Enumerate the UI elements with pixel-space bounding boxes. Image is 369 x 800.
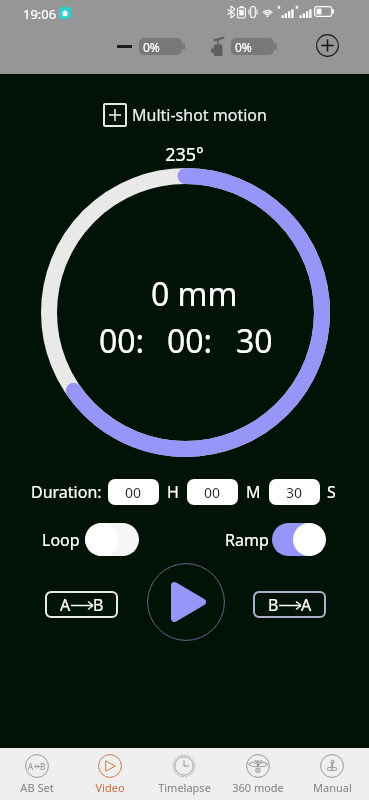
staticText: 00 (125, 483, 142, 502)
staticText: 00: (99, 319, 145, 363)
staticText: B (40, 761, 46, 772)
staticText: S (327, 481, 336, 503)
staticText: Loop (42, 529, 80, 551)
staticText: 0% (235, 39, 252, 55)
staticText: 360 (254, 759, 263, 766)
staticText: 30 (286, 483, 303, 502)
staticText: Manual (313, 780, 352, 795)
staticText: 235° (0, 142, 369, 167)
staticText: Timelapse (158, 780, 211, 795)
staticText: M (246, 481, 261, 503)
staticText: A (60, 594, 71, 616)
button[interactable]: 30 (269, 479, 320, 505)
staticText: AB Set (20, 780, 54, 795)
button[interactable] (272, 523, 326, 556)
button[interactable] (85, 523, 139, 556)
staticText: 19:06 (23, 5, 57, 23)
button[interactable]: Play (147, 563, 225, 641)
button[interactable]: 00 (108, 479, 159, 505)
button[interactable]: A to B (45, 591, 118, 618)
staticText: B (93, 594, 104, 616)
staticText: A (301, 594, 312, 616)
button[interactable]: Multi-shot motion (103, 103, 267, 127)
staticText: 30 (236, 319, 273, 363)
staticText: B (268, 594, 279, 616)
button[interactable]: Manual (295, 748, 369, 800)
button[interactable]: 0% (139, 38, 185, 55)
button[interactable]: 360 (221, 748, 295, 800)
staticText: 0% (143, 39, 160, 55)
staticText: 00: (167, 319, 213, 363)
staticText: 00 (204, 483, 221, 502)
button[interactable]: Add (316, 34, 339, 57)
staticText: Ramp (225, 529, 269, 551)
staticText: 360 mode (232, 780, 284, 795)
staticText: Video (95, 780, 125, 795)
button[interactable]: B to A (253, 591, 326, 618)
staticText: A (28, 761, 34, 772)
staticText: Multi-shot motion (132, 104, 267, 126)
button[interactable]: Video (73, 748, 147, 800)
staticText: H (167, 481, 179, 503)
button[interactable]: 0% (231, 38, 277, 55)
button[interactable]: Timelapse (147, 748, 221, 800)
button[interactable]: A (0, 748, 73, 800)
button[interactable]: 00 (187, 479, 238, 505)
staticText: 0 mm (151, 272, 238, 316)
staticText: Duration: (31, 481, 102, 503)
